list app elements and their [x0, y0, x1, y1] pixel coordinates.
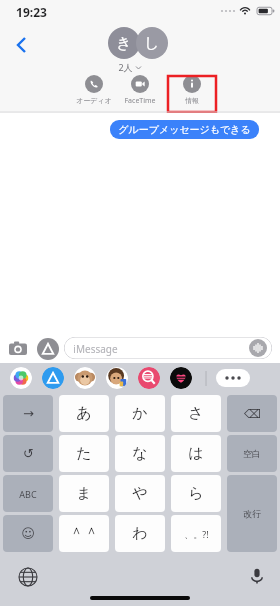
- button[interactable]: Camera: [8, 339, 28, 359]
- button[interactable]: 空白: [227, 435, 277, 472]
- button[interactable]: App: [106, 367, 128, 389]
- button[interactable]: iMessage: [64, 337, 272, 359]
- button[interactable]: ⌫: [227, 395, 277, 432]
- staticText: ら: [188, 484, 204, 503]
- button[interactable]: さ: [171, 395, 221, 432]
- staticText: わ: [132, 524, 148, 543]
- button[interactable]: ＾＾: [59, 515, 109, 552]
- button[interactable]: More apps: [216, 369, 250, 387]
- staticText: 、。?!: [184, 528, 209, 540]
- button[interactable]: App: [138, 367, 160, 389]
- staticText: 改行: [243, 508, 261, 519]
- staticText: た: [76, 444, 92, 463]
- staticText: 空白: [243, 448, 261, 459]
- button[interactable]: な: [115, 435, 165, 472]
- button[interactable]: ↺: [3, 435, 53, 472]
- button[interactable]: や: [115, 475, 165, 512]
- staticText: 情報: [185, 96, 199, 105]
- staticText: ⌫: [244, 407, 261, 421]
- button[interactable]: ら: [171, 475, 221, 512]
- button[interactable]: Switch keyboard: [18, 567, 38, 587]
- button[interactable]: 情報: [170, 75, 214, 105]
- staticText: ABC: [19, 488, 37, 500]
- staticText: ま: [76, 484, 92, 503]
- staticText: あ: [76, 404, 92, 423]
- staticText: 2人: [118, 61, 133, 73]
- staticText: オーディオ: [76, 96, 112, 105]
- button[interactable]: Dictation: [247, 566, 267, 586]
- button[interactable]: ABC: [3, 475, 53, 512]
- staticText: や: [132, 484, 148, 503]
- button[interactable]: App: [170, 367, 192, 389]
- button[interactable]: App: [42, 367, 64, 389]
- button[interactable]: 改行: [227, 475, 277, 552]
- button[interactable]: ☺: [3, 515, 53, 552]
- button[interactable]: App Store: [37, 338, 59, 360]
- button[interactable]: わ: [115, 515, 165, 552]
- button[interactable]: あ: [59, 395, 109, 432]
- staticText: FaceTime: [124, 96, 156, 106]
- button[interactable]: Audio message: [249, 339, 267, 357]
- staticText: →: [23, 406, 34, 421]
- button[interactable]: 2人: [118, 61, 142, 73]
- staticText: し: [144, 34, 160, 53]
- button[interactable]: →: [3, 395, 53, 432]
- button[interactable]: Back: [8, 30, 38, 60]
- staticText: さ: [188, 404, 204, 423]
- button[interactable]: ま: [59, 475, 109, 512]
- button[interactable]: た: [59, 435, 109, 472]
- staticText: は: [188, 444, 204, 463]
- button[interactable]: オーディオ: [72, 75, 116, 105]
- staticText: か: [132, 404, 148, 423]
- staticText: き: [116, 34, 132, 53]
- button[interactable]: FaceTime: [118, 75, 162, 106]
- staticText: な: [132, 444, 148, 463]
- button[interactable]: か: [115, 395, 165, 432]
- button[interactable]: 、。?!: [171, 515, 221, 552]
- staticText: ☺: [21, 526, 35, 541]
- button[interactable]: App: [74, 367, 96, 389]
- button[interactable]: は: [171, 435, 221, 472]
- staticText: iMessage: [73, 342, 118, 356]
- staticText: ↺: [23, 446, 34, 461]
- button[interactable]: App: [10, 367, 32, 389]
- staticText: ＾＾: [69, 524, 99, 543]
- staticText: 19:23: [16, 4, 47, 20]
- staticText: グループメッセージもできる: [118, 123, 251, 136]
- button[interactable]: グループメッセージもできる: [110, 120, 259, 139]
